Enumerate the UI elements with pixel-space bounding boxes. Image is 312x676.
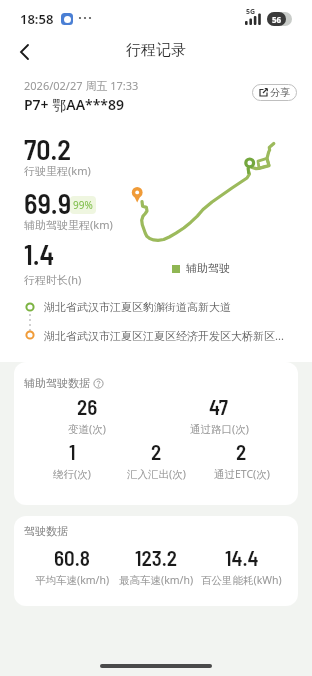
staticText: 70.2 xyxy=(24,132,72,166)
staticText: 湖北省武汉市江夏区江夏区经济开发区大桥新区... xyxy=(44,328,284,343)
button[interactable] xyxy=(10,38,38,66)
staticText: 56 xyxy=(272,14,282,25)
staticText: 通过路口(次) xyxy=(190,422,249,436)
staticText: 辅助驾驶 xyxy=(186,261,230,275)
staticText: 5G xyxy=(246,7,256,17)
staticText: 行程记录 xyxy=(0,41,312,60)
staticText: 湖北省武汉市江夏区豹澥街道高新大道 xyxy=(44,300,231,314)
staticText: 2 xyxy=(151,439,162,464)
staticText: 绕行(次) xyxy=(53,467,91,481)
staticText: 变道(次) xyxy=(68,422,106,436)
staticText: 14.4 xyxy=(225,545,259,570)
staticText: 平均车速(km/h) xyxy=(35,573,110,587)
staticText: 2026/02/27 周五 17:33 xyxy=(24,78,139,93)
staticText: 百公里能耗(kWh) xyxy=(201,573,282,587)
staticText: 18:58 xyxy=(20,10,54,28)
staticText: 辅助驾驶数据 xyxy=(24,376,90,390)
staticText: 辅助驾驶里程(km) xyxy=(24,217,113,232)
staticText: 1.4 xyxy=(24,237,55,271)
staticText: 行程时长(h) xyxy=(24,272,82,287)
staticText: 47 xyxy=(209,394,229,419)
staticText: 2 xyxy=(236,439,247,464)
staticText: 行驶里程(km) xyxy=(24,163,91,178)
staticText: 1 xyxy=(69,439,76,464)
staticText: 汇入汇出(次) xyxy=(127,467,186,481)
button[interactable]: 分享 xyxy=(252,84,297,101)
staticText: 99% xyxy=(73,198,93,212)
staticText: P7+ 鄂AA***89 xyxy=(24,95,125,114)
staticText: 60.8 xyxy=(54,545,90,570)
staticText: 123.2 xyxy=(135,545,178,570)
staticText: 分享 xyxy=(270,86,290,99)
staticText: 26 xyxy=(77,394,98,419)
staticText: 通过ETC(次) xyxy=(214,467,270,481)
staticText: 驾驶数据 xyxy=(24,524,68,538)
staticText: 最高车速(km/h) xyxy=(119,573,194,587)
staticText: 69.9 xyxy=(24,186,72,220)
